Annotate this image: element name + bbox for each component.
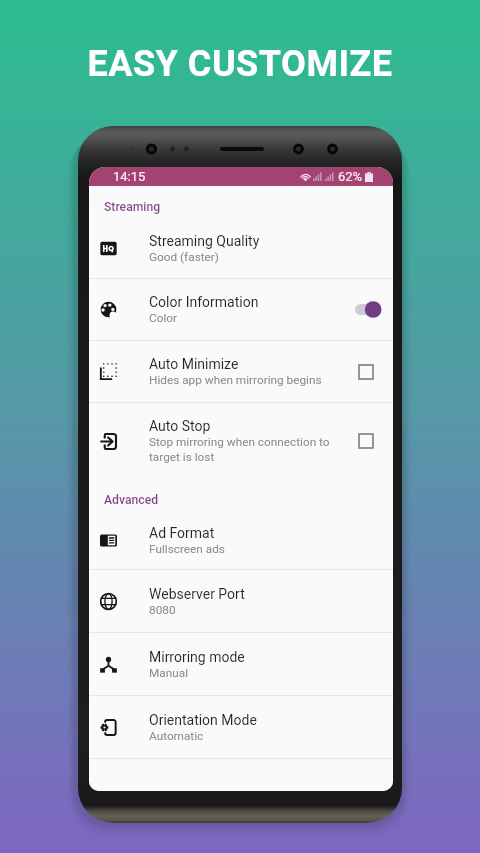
button[interactable]: Streaming Quality [89,218,393,278]
staticText: 14:15 [113,169,146,184]
staticText: Automatic [149,729,204,743]
staticText: Good (faster) [149,250,219,264]
button[interactable]: Ad Format [89,511,393,569]
staticText: Fullscreen ads [149,542,225,556]
button[interactable]: Mirroring mode [89,633,393,695]
staticText: 62% [338,169,363,184]
button[interactable]: Orientation Mode [89,696,393,758]
staticText: Auto Stop [149,418,211,434]
staticText: Color [149,311,178,325]
staticText: Manual [149,666,189,680]
staticText: Advanced [104,493,159,507]
staticText: EASY CUSTOMIZE [0,43,480,85]
staticText: 8080 [149,603,176,617]
other: Toggle color information [355,301,382,318]
other: Checkbox [359,365,373,379]
staticText: Ad Format [149,525,215,541]
staticText: Streaming [104,200,161,214]
staticText: Streaming Quality [149,233,260,249]
button[interactable]: Auto Minimize [89,341,393,402]
staticText: Mirroring mode [149,649,245,665]
staticText: Webserver Port [149,586,245,602]
staticText: Auto Minimize [149,356,239,372]
button[interactable]: Webserver Port [89,570,393,632]
other: Checkbox [359,434,373,448]
button[interactable]: Auto Stop [89,403,393,479]
staticText: Hides app when mirroring begins [149,373,322,387]
staticText: Color Information [149,294,259,310]
staticText: Orientation Mode [149,712,257,728]
button[interactable]: Color Information [89,279,393,340]
staticText: Stop mirroring when connection to target… [149,435,330,464]
